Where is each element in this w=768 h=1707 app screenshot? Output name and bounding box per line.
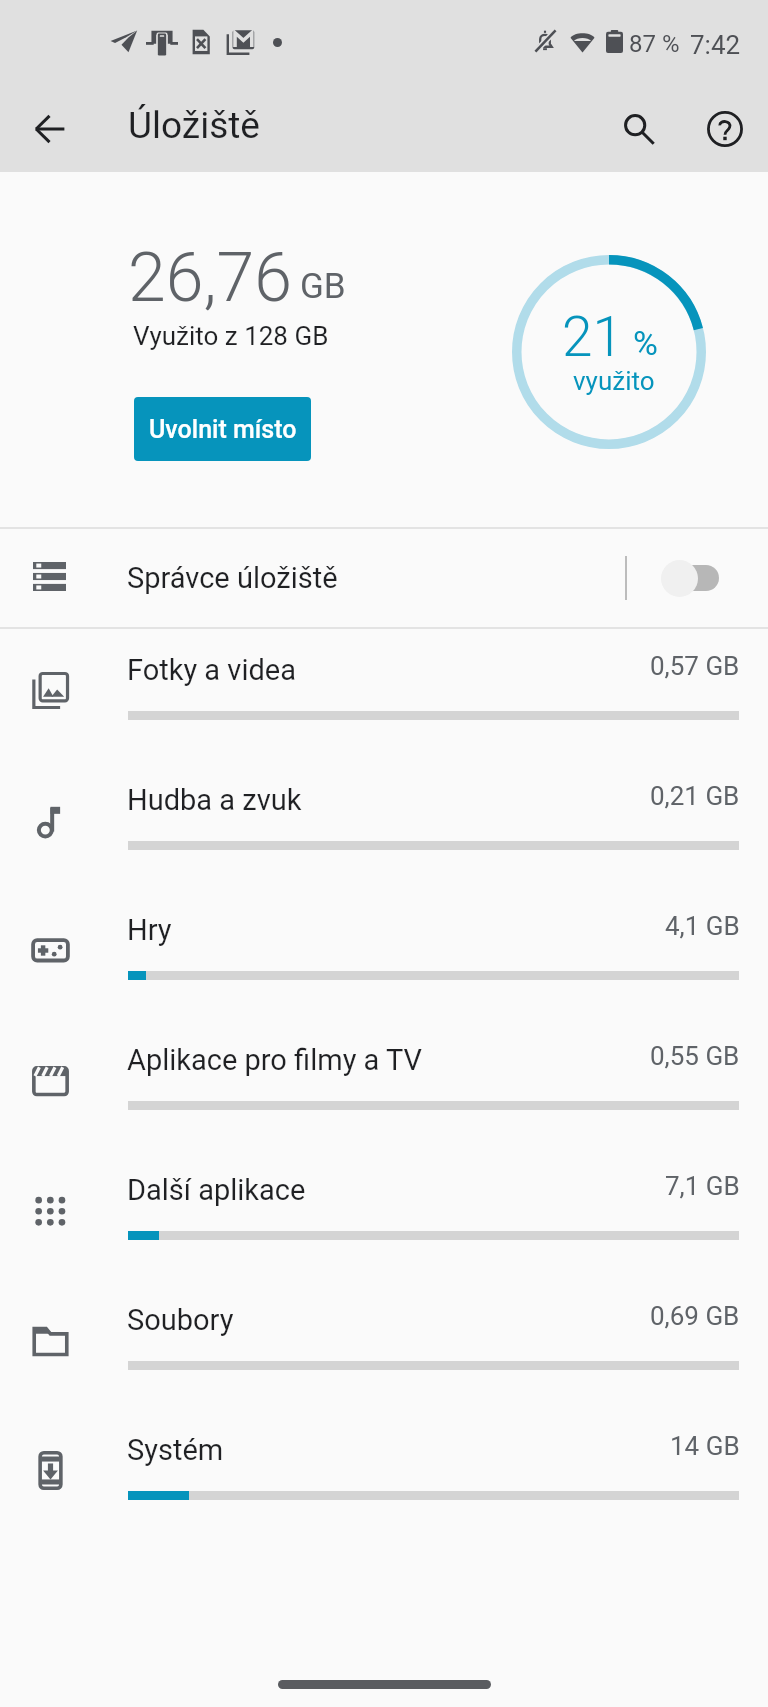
staticText: 7,1 GB bbox=[665, 1171, 740, 1201]
staticText: Další aplikace bbox=[127, 1173, 306, 1207]
staticText: 4,1 GB bbox=[665, 911, 740, 941]
staticText: využito bbox=[573, 366, 655, 396]
staticText: 0,55 GB bbox=[650, 1041, 740, 1071]
button[interactable]: Soubory bbox=[0, 1278, 768, 1408]
staticText: Hry bbox=[127, 913, 172, 947]
staticText: Soubory bbox=[127, 1303, 234, 1337]
button[interactable]: Uvolnit místo bbox=[134, 397, 311, 461]
staticText: Aplikace pro filmy a TV bbox=[127, 1043, 422, 1077]
staticText: GB bbox=[300, 266, 346, 307]
button[interactable]: Storage manager toggle bbox=[655, 554, 745, 602]
button[interactable]: Help bbox=[697, 101, 753, 157]
staticText: 87 % bbox=[629, 30, 680, 58]
staticText: Fotky a videa bbox=[127, 653, 296, 687]
staticText: 0,57 GB bbox=[650, 651, 740, 681]
button[interactable]: Fotky a videa bbox=[0, 628, 768, 758]
staticText: Využito z 128 GB bbox=[133, 321, 329, 351]
button[interactable]: Správce úložiště bbox=[0, 528, 768, 627]
staticText: 26,76 bbox=[128, 238, 292, 318]
staticText: 0,69 GB bbox=[650, 1301, 740, 1331]
staticText: 21 bbox=[562, 305, 624, 369]
staticText: Systém bbox=[127, 1433, 224, 1467]
staticText: 0,21 GB bbox=[650, 781, 740, 811]
button[interactable]: Aplikace pro filmy a TV bbox=[0, 1018, 768, 1148]
button[interactable]: Systém bbox=[0, 1408, 768, 1538]
staticText: Úložiště bbox=[128, 104, 260, 147]
button[interactable]: Back bbox=[21, 101, 77, 157]
staticText: % bbox=[633, 323, 658, 363]
staticText: Správce úložiště bbox=[127, 561, 338, 595]
button[interactable]: Hry bbox=[0, 888, 768, 1018]
staticText: Uvolnit místo bbox=[149, 415, 297, 444]
staticText: 14 GB bbox=[670, 1431, 740, 1461]
button[interactable]: Search bbox=[611, 101, 667, 157]
button[interactable]: Další aplikace bbox=[0, 1148, 768, 1278]
staticText: Hudba a zvuk bbox=[127, 783, 302, 817]
staticText: 7:42 bbox=[690, 30, 741, 60]
button[interactable]: Hudba a zvuk bbox=[0, 758, 768, 888]
